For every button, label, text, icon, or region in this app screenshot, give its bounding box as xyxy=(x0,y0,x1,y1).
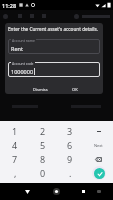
staticText: Next xyxy=(94,143,103,148)
button[interactable]: Hide keyboard xyxy=(0,183,41,200)
staticText: Dismiss xyxy=(33,87,48,92)
button[interactable]: 0 xyxy=(30,166,56,180)
button[interactable]: 6 xyxy=(56,138,84,152)
button[interactable]: Next xyxy=(84,138,113,152)
staticText: 0 xyxy=(40,167,46,179)
button[interactable]: 5 xyxy=(30,138,56,152)
staticText: 11:28 xyxy=(2,2,17,9)
button[interactable]: Home xyxy=(41,183,72,200)
staticText: 6 xyxy=(67,139,73,151)
staticText: 9 xyxy=(67,153,73,165)
button[interactable]: , xyxy=(0,166,30,180)
staticText: 3 xyxy=(67,125,73,137)
button[interactable]: Switch keyboard xyxy=(95,183,113,200)
staticText: Rent xyxy=(11,45,23,52)
staticText: 4 xyxy=(12,139,18,151)
button[interactable] xyxy=(8,62,100,77)
button[interactable]: 7 xyxy=(0,152,30,166)
button[interactable] xyxy=(8,39,100,54)
staticText: 1000000 xyxy=(11,68,34,75)
staticText: , xyxy=(14,167,17,179)
staticText: OK xyxy=(72,87,78,92)
staticText: 8 xyxy=(40,153,46,165)
button[interactable]: Done xyxy=(84,166,113,180)
button[interactable]: 8 xyxy=(30,152,56,166)
button[interactable]: 1 xyxy=(0,124,30,138)
staticText: . xyxy=(69,167,72,179)
button[interactable]: 9 xyxy=(56,152,84,166)
button[interactable]: Backspace xyxy=(84,152,113,166)
button[interactable]: OK xyxy=(68,85,82,94)
staticText: Account name xyxy=(12,38,35,43)
button[interactable]: Dismiss xyxy=(29,85,52,94)
button[interactable]: 3 xyxy=(56,124,84,138)
staticText: 5 xyxy=(40,139,46,151)
staticText: 7 xyxy=(12,153,18,165)
button[interactable]: Minus xyxy=(84,124,113,138)
button[interactable]: . xyxy=(56,166,84,180)
staticText: Enter the Current asset's account detail… xyxy=(8,26,98,32)
staticText: Account code xyxy=(12,61,34,66)
staticText: 2 xyxy=(40,125,46,137)
button[interactable]: Recents xyxy=(72,183,95,200)
button[interactable]: 4 xyxy=(0,138,30,152)
button[interactable]: 2 xyxy=(30,124,56,138)
staticText: 1 xyxy=(12,125,18,137)
